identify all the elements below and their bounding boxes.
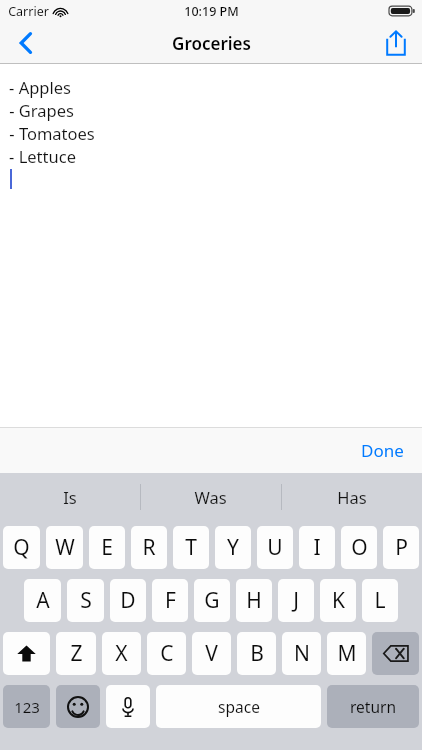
button[interactable]: Has bbox=[281, 473, 422, 521]
staticText: - Grapes bbox=[9, 99, 74, 121]
staticText: Done bbox=[361, 439, 404, 462]
staticText: Q bbox=[13, 533, 30, 562]
staticText: I bbox=[313, 533, 321, 562]
staticText: Has bbox=[337, 486, 367, 508]
button[interactable]: space bbox=[156, 685, 321, 728]
staticText: Y bbox=[227, 533, 239, 562]
staticText: D bbox=[120, 586, 136, 615]
button[interactable]: Z bbox=[56, 632, 96, 675]
button[interactable]: U bbox=[257, 526, 293, 569]
button[interactable]: P bbox=[383, 526, 419, 569]
staticText: L bbox=[374, 586, 386, 615]
staticText: Carrier bbox=[8, 3, 49, 20]
staticText: P bbox=[395, 533, 408, 562]
staticText: space bbox=[218, 696, 260, 717]
button[interactable]: Is bbox=[0, 473, 140, 521]
button[interactable]: Emoji bbox=[56, 685, 100, 728]
staticText: U bbox=[267, 533, 283, 562]
button[interactable]: Done bbox=[353, 433, 412, 468]
button[interactable]: T bbox=[173, 526, 209, 569]
staticText: A bbox=[36, 586, 50, 615]
button[interactable]: return bbox=[327, 685, 419, 728]
staticText: W bbox=[55, 533, 75, 562]
button[interactable]: M bbox=[327, 632, 366, 675]
staticText: K bbox=[332, 586, 345, 615]
staticText: X bbox=[115, 639, 128, 668]
staticText: - Tomatoes bbox=[9, 122, 95, 144]
staticText: N bbox=[294, 639, 310, 668]
staticText: C bbox=[160, 639, 174, 668]
button[interactable]: N bbox=[282, 632, 321, 675]
button[interactable]: A bbox=[24, 579, 61, 622]
staticText: - Lettuce bbox=[9, 145, 76, 167]
staticText: G bbox=[204, 586, 220, 615]
button[interactable]: O bbox=[341, 526, 377, 569]
button[interactable]: Share bbox=[370, 22, 422, 64]
button[interactable]: Q bbox=[3, 526, 40, 569]
button[interactable]: F bbox=[152, 579, 188, 622]
button[interactable]: C bbox=[147, 632, 186, 675]
staticText: F bbox=[165, 586, 176, 615]
staticText: R bbox=[142, 533, 156, 562]
staticText: Z bbox=[70, 639, 83, 668]
staticText: return bbox=[350, 696, 396, 717]
button[interactable]: K bbox=[320, 579, 356, 622]
button[interactable]: V bbox=[192, 632, 231, 675]
button[interactable]: H bbox=[236, 579, 272, 622]
staticText: B bbox=[250, 639, 264, 668]
button[interactable]: X bbox=[102, 632, 141, 675]
button[interactable]: D bbox=[110, 579, 146, 622]
button[interactable]: R bbox=[131, 526, 167, 569]
staticText: H bbox=[246, 586, 262, 615]
staticText: Is bbox=[63, 486, 77, 508]
button[interactable]: 123 bbox=[3, 685, 50, 728]
button[interactable]: E bbox=[89, 526, 125, 569]
button[interactable]: Was bbox=[140, 473, 281, 521]
staticText: Was bbox=[194, 486, 227, 508]
staticText: J bbox=[293, 586, 299, 615]
staticText: - Apples bbox=[9, 76, 71, 98]
staticText: 10:19 PM bbox=[184, 3, 239, 20]
button[interactable]: J bbox=[278, 579, 314, 622]
button[interactable]: I bbox=[299, 526, 335, 569]
button[interactable]: L bbox=[362, 579, 398, 622]
staticText: S bbox=[80, 586, 92, 615]
button[interactable]: Y bbox=[215, 526, 251, 569]
button[interactable]: S bbox=[67, 579, 104, 622]
button[interactable]: Dictation bbox=[106, 685, 150, 728]
staticText: M bbox=[337, 639, 357, 668]
button[interactable]: Shift bbox=[3, 632, 50, 675]
button[interactable]: Backspace bbox=[372, 632, 419, 675]
staticText: O bbox=[351, 533, 368, 562]
staticText: T bbox=[185, 533, 197, 562]
button[interactable]: W bbox=[46, 526, 83, 569]
button[interactable]: Back bbox=[0, 22, 52, 64]
button[interactable]: B bbox=[237, 632, 276, 675]
staticText: E bbox=[101, 533, 113, 562]
staticText: 123 bbox=[14, 697, 40, 717]
staticText: V bbox=[205, 639, 218, 668]
button[interactable]: G bbox=[194, 579, 230, 622]
staticText: Groceries bbox=[172, 32, 251, 55]
